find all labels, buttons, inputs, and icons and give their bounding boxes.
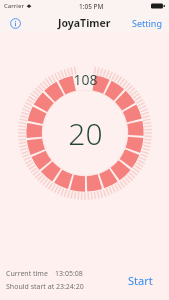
staticText: 20	[68, 113, 103, 154]
staticText: 108	[73, 70, 98, 89]
staticText: JoyaTimer	[58, 16, 111, 30]
button[interactable]: Setting	[130, 15, 164, 31]
staticText: Should start at 23:24:20	[6, 282, 84, 292]
staticText: Carrier	[4, 2, 24, 10]
staticText: 13:05:08	[55, 269, 83, 279]
staticText: Start	[128, 273, 153, 288]
staticText: Current time	[6, 269, 48, 279]
button[interactable]: Start	[124, 270, 157, 291]
staticText: Setting	[132, 17, 162, 29]
button[interactable]: Info	[6, 14, 24, 32]
staticText: 1:05 PM	[79, 2, 104, 11]
